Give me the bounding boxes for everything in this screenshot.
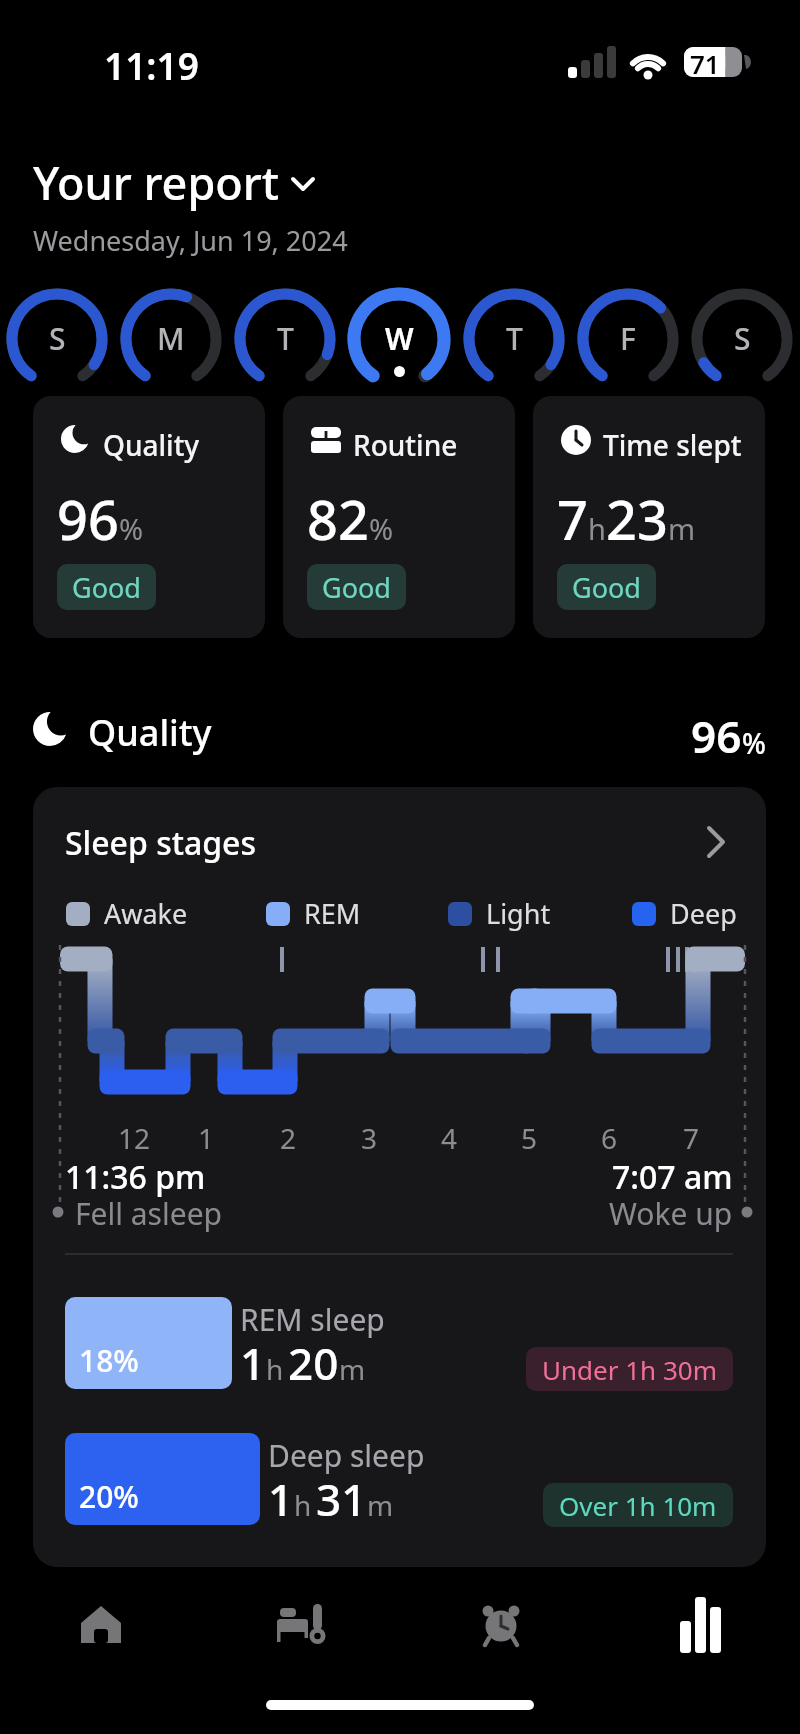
staticText: Awake bbox=[104, 895, 188, 932]
staticText: S bbox=[734, 318, 751, 359]
button[interactable]: S bbox=[690, 286, 794, 390]
staticText: 2 bbox=[280, 1119, 297, 1157]
staticText: Light bbox=[486, 895, 551, 932]
staticText: 71 bbox=[690, 46, 720, 81]
staticText: 96 bbox=[691, 706, 742, 766]
staticText: 7 bbox=[683, 1119, 700, 1157]
staticText: 1 bbox=[240, 1333, 266, 1393]
button[interactable]: Time slept bbox=[533, 396, 765, 638]
staticText: h bbox=[588, 509, 606, 548]
staticText: Fell asleep bbox=[75, 1193, 222, 1234]
staticText: 11:36 pm bbox=[65, 1155, 206, 1199]
staticText: Quality bbox=[103, 426, 200, 464]
button[interactable]: S bbox=[5, 286, 109, 390]
staticText: Wednesday, Jun 19, 2024 bbox=[33, 222, 348, 259]
staticText: 20% bbox=[79, 1476, 139, 1517]
staticText: Over 1h 10m bbox=[559, 1488, 717, 1523]
staticText: 31 bbox=[316, 1469, 367, 1529]
staticText: Under 1h 30m bbox=[542, 1352, 717, 1387]
button[interactable]: F bbox=[576, 286, 680, 390]
button[interactable] bbox=[251, 1575, 351, 1675]
button[interactable]: Quality bbox=[33, 396, 265, 638]
button[interactable]: Sleep stages bbox=[33, 787, 766, 897]
button[interactable]: 20% bbox=[33, 1433, 766, 1525]
staticText: Woke up bbox=[609, 1193, 733, 1234]
staticText: m bbox=[339, 1350, 366, 1388]
staticText: h bbox=[294, 1486, 312, 1524]
staticText: Good bbox=[72, 569, 141, 606]
staticText: 12 bbox=[118, 1119, 151, 1157]
staticText: m bbox=[668, 509, 696, 548]
staticText: Good bbox=[322, 569, 391, 606]
staticText: 5 bbox=[521, 1119, 538, 1157]
staticText: M bbox=[157, 318, 185, 359]
button[interactable]: T bbox=[233, 286, 337, 390]
button[interactable] bbox=[451, 1575, 551, 1675]
staticText: 3 bbox=[361, 1119, 378, 1157]
staticText: Deep sleep bbox=[268, 1435, 425, 1476]
staticText: W bbox=[385, 318, 414, 359]
staticText: Quality bbox=[88, 708, 212, 757]
button[interactable]: 18% bbox=[33, 1297, 766, 1389]
staticText: Your report bbox=[33, 152, 280, 213]
button[interactable]: M bbox=[119, 286, 223, 390]
button[interactable]: W bbox=[347, 286, 451, 390]
staticText: 1 bbox=[198, 1119, 215, 1157]
staticText: Time slept bbox=[603, 426, 742, 464]
staticText: 82 bbox=[307, 482, 369, 556]
staticText: 7:07 am bbox=[612, 1155, 733, 1199]
button[interactable] bbox=[51, 1575, 151, 1675]
button[interactable]: Your report bbox=[0, 140, 800, 270]
button[interactable]: T bbox=[462, 286, 566, 390]
staticText: Sleep stages bbox=[65, 821, 257, 865]
button[interactable] bbox=[651, 1575, 751, 1675]
staticText: REM bbox=[304, 895, 361, 932]
staticText: % bbox=[369, 509, 394, 548]
staticText: 1 bbox=[268, 1469, 294, 1529]
staticText: Routine bbox=[353, 426, 458, 464]
staticText: 7 bbox=[557, 482, 588, 556]
button[interactable]: Routine bbox=[283, 396, 515, 638]
staticText: T bbox=[277, 318, 294, 359]
staticText: S bbox=[49, 318, 66, 359]
staticText: 11:19 bbox=[104, 40, 199, 90]
staticText: m bbox=[367, 1486, 394, 1524]
staticText: 4 bbox=[441, 1119, 458, 1157]
staticText: Deep bbox=[670, 895, 737, 932]
staticText: 20 bbox=[288, 1333, 339, 1393]
staticText: 18% bbox=[79, 1340, 139, 1381]
staticText: 6 bbox=[601, 1119, 618, 1157]
staticText: 96 bbox=[57, 482, 119, 556]
staticText: T bbox=[506, 318, 523, 359]
staticText: REM sleep bbox=[240, 1299, 385, 1340]
staticText: F bbox=[620, 318, 636, 359]
staticText: % bbox=[742, 724, 766, 762]
staticText: Good bbox=[572, 569, 641, 606]
staticText: h bbox=[266, 1350, 284, 1388]
staticText: % bbox=[119, 509, 144, 548]
staticText: 23 bbox=[606, 482, 668, 556]
